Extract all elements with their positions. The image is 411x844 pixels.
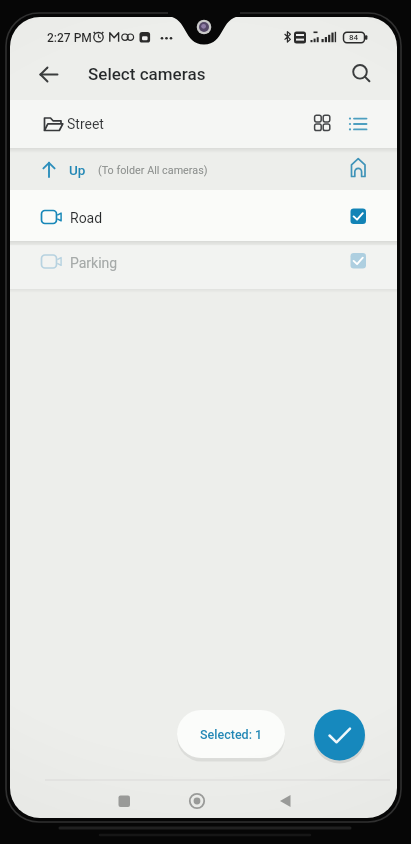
staticText: (To folder All cameras) <box>98 164 208 177</box>
staticText: Up <box>69 162 86 178</box>
staticText: 84 <box>349 33 359 42</box>
staticText: Selected: 1 <box>200 727 263 742</box>
staticText: 2:27 PM <box>47 31 92 45</box>
staticText: Street <box>67 116 104 132</box>
staticText: Parking <box>70 255 118 271</box>
staticText: Select cameras <box>88 64 206 84</box>
staticText: Road <box>70 210 103 226</box>
